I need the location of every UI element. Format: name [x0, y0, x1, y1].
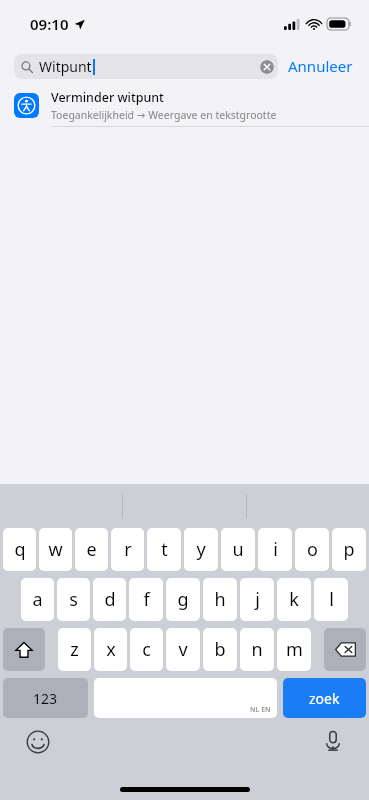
- button[interactable]: Shift: [3, 628, 45, 671]
- button[interactable]: Witpunt: [14, 54, 278, 79]
- button[interactable]: r: [111, 528, 144, 571]
- button[interactable]: v: [166, 628, 200, 671]
- staticText: zoek: [309, 689, 340, 708]
- button[interactable]: u: [221, 528, 255, 571]
- staticText: NL EN: [250, 705, 271, 715]
- staticText: v: [178, 637, 188, 662]
- staticText: a: [32, 587, 43, 612]
- staticText: t: [161, 537, 168, 562]
- button[interactable]: g: [166, 578, 200, 621]
- button[interactable]: m: [277, 628, 311, 671]
- staticText: y: [196, 537, 206, 562]
- button[interactable]: l: [314, 578, 348, 621]
- button[interactable]: n: [240, 628, 274, 671]
- button[interactable]: j: [240, 578, 274, 621]
- staticText: s: [69, 587, 78, 612]
- staticText: g: [177, 587, 189, 612]
- staticText: Toegankelijkheid → Weergave en tekstgroo…: [51, 108, 277, 122]
- staticText: m: [286, 637, 303, 662]
- button[interactable]: k: [277, 578, 311, 621]
- button[interactable]: y: [184, 528, 218, 571]
- staticText: w: [48, 537, 63, 562]
- button[interactable]: c: [130, 628, 163, 671]
- staticText: 123: [33, 689, 58, 708]
- staticText: l: [329, 587, 334, 612]
- button[interactable]: Spatie: [94, 678, 277, 718]
- button[interactable]: o: [295, 528, 329, 571]
- button[interactable]: f: [129, 578, 163, 621]
- staticText: p: [343, 537, 355, 562]
- staticText: k: [289, 587, 299, 612]
- button[interactable]: Backspace: [324, 628, 366, 671]
- button[interactable]: Verminder witpunt: [0, 84, 369, 126]
- button[interactable]: 123: [3, 678, 88, 718]
- staticText: q: [14, 537, 26, 562]
- button[interactable]: t: [147, 528, 181, 571]
- staticText: Witpunt: [39, 57, 92, 76]
- staticText: f: [143, 587, 150, 612]
- staticText: Verminder witpunt: [51, 89, 164, 106]
- button[interactable]: Emoji: [26, 730, 50, 754]
- staticText: u: [232, 537, 244, 562]
- button[interactable]: s: [57, 578, 90, 621]
- staticText: z: [70, 637, 79, 662]
- staticText: r: [124, 537, 132, 562]
- button[interactable]: h: [203, 578, 237, 621]
- button[interactable]: p: [332, 528, 366, 571]
- staticText: 09:10: [30, 14, 69, 34]
- button[interactable]: x: [94, 628, 127, 671]
- staticText: j: [255, 587, 260, 612]
- staticText: d: [104, 587, 116, 612]
- button[interactable]: Wis tekst: [260, 60, 274, 74]
- button[interactable]: w: [39, 528, 72, 571]
- button[interactable]: e: [75, 528, 108, 571]
- button[interactable]: a: [21, 578, 54, 621]
- staticText: n: [251, 637, 263, 662]
- button[interactable]: q: [3, 528, 36, 571]
- staticText: o: [307, 537, 318, 562]
- button[interactable]: z: [58, 628, 91, 671]
- staticText: x: [106, 637, 116, 662]
- staticText: h: [214, 587, 226, 612]
- button[interactable]: d: [93, 578, 126, 621]
- button[interactable]: b: [203, 628, 237, 671]
- button[interactable]: i: [258, 528, 292, 571]
- button[interactable]: Annuleer: [278, 56, 355, 76]
- staticText: i: [273, 537, 278, 562]
- staticText: Annuleer: [288, 56, 353, 76]
- staticText: b: [214, 637, 226, 662]
- staticText: e: [86, 537, 97, 562]
- button[interactable]: zoek: [283, 678, 366, 718]
- button[interactable]: Dicteren: [321, 729, 345, 753]
- staticText: c: [142, 637, 151, 662]
